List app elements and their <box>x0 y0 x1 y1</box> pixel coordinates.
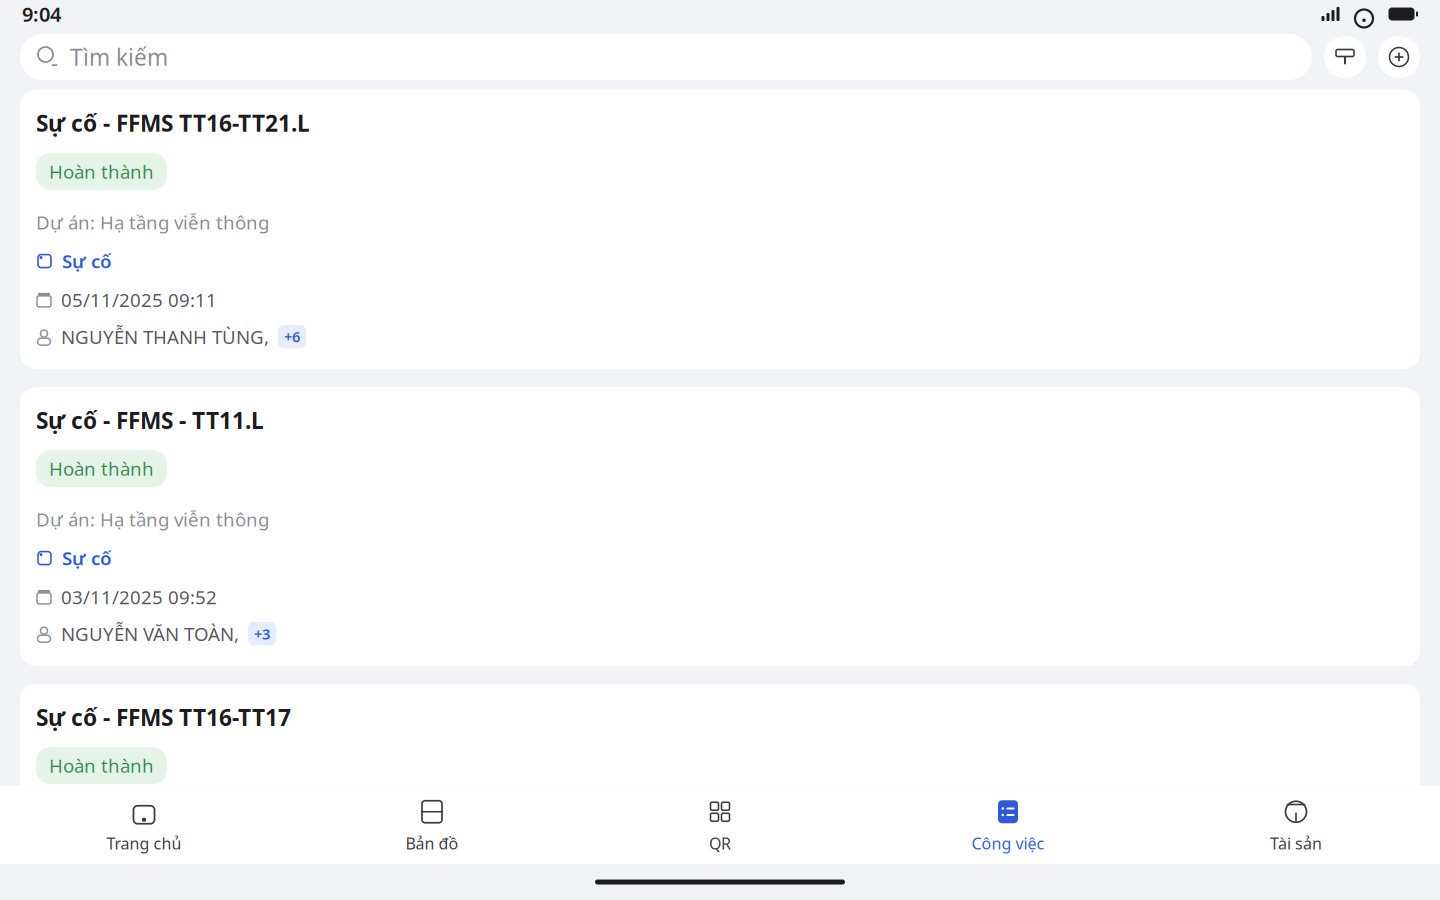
staticText: Hoàn thành <box>49 456 154 481</box>
button[interactable]: Tài sản <box>1152 786 1440 864</box>
staticText: QR <box>709 833 731 854</box>
button[interactable]: Công việc <box>864 786 1152 864</box>
staticText: Tài sản <box>1270 833 1322 854</box>
staticText: Dự án: Hạ tầng viễn thông <box>36 507 269 532</box>
button[interactable]: Thêm mới <box>1378 36 1420 78</box>
staticText: NGUYỄN THANH TÙNG, <box>61 324 269 349</box>
staticText: Dự án: Hạ tầng viễn thông <box>36 804 269 829</box>
staticText: Sự cố - FFMS TT16-TT17 <box>36 702 291 732</box>
staticText: 05/11/2025 09:11 <box>61 287 217 312</box>
staticText: Trang chủ <box>106 833 181 854</box>
staticText: 9:04 <box>22 1 61 27</box>
staticText: Hoàn thành <box>49 753 154 778</box>
staticText: +6 <box>284 327 300 346</box>
button[interactable]: Sự cố - FFMS TT16-TT21.L <box>20 90 1420 369</box>
button[interactable]: QR <box>576 786 864 864</box>
button[interactable]: Sự cố - FFMS TT16-TT17 <box>20 684 1420 900</box>
button[interactable]: Sự cố - FFMS - TT11.L <box>20 387 1420 666</box>
staticText: Tìm kiếm <box>70 42 168 72</box>
button[interactable]: Bộ lọc <box>1324 36 1366 78</box>
staticText: Sự cố <box>62 546 112 570</box>
staticText: NGUYỄN VĂN TOÀN, <box>61 621 239 646</box>
staticText: Công việc <box>971 833 1044 854</box>
button[interactable]: Bản đồ <box>288 786 576 864</box>
staticText: Sự cố - FFMS TT16-TT21.L <box>36 108 310 138</box>
staticText: Sự cố <box>62 843 112 868</box>
button[interactable]: Tìm kiếm <box>20 34 1312 80</box>
staticText: Dự án: Hạ tầng viễn thông <box>36 210 269 235</box>
button[interactable]: Trang chủ <box>0 786 288 864</box>
staticText: 03/11/2025 09:52 <box>61 584 217 609</box>
staticText: Hoàn thành <box>49 159 154 184</box>
staticText: Bản đồ <box>405 833 458 854</box>
staticText: Sự cố <box>62 249 112 273</box>
staticText: Sự cố - FFMS - TT11.L <box>36 405 264 435</box>
staticText: +3 <box>254 624 270 643</box>
